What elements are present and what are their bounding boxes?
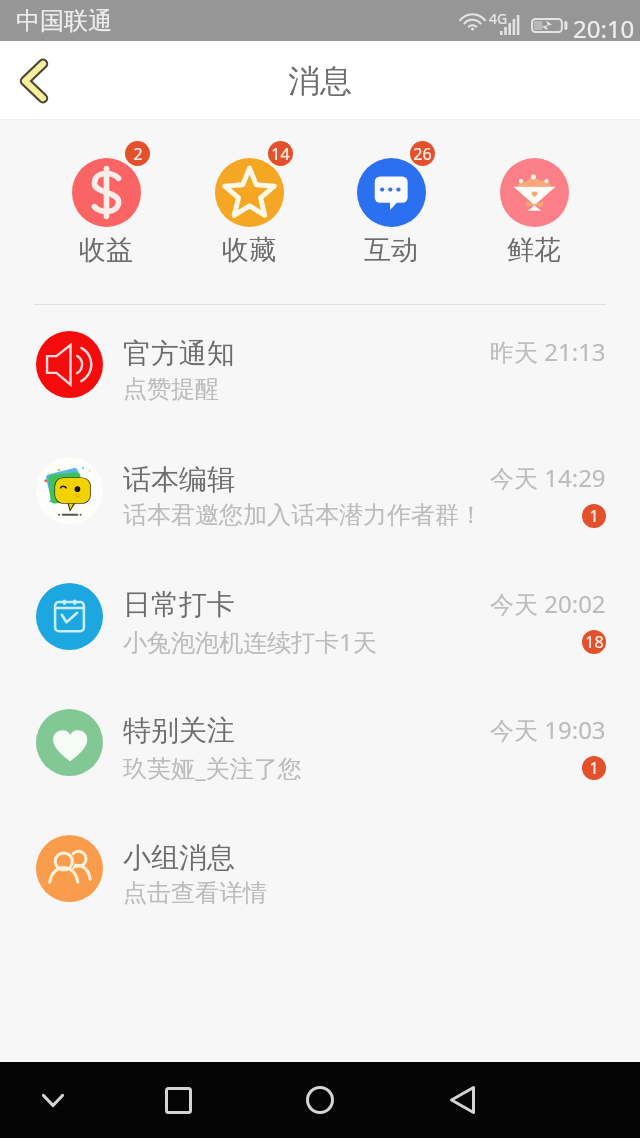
staticText: 今天 20:02 [490,587,606,617]
staticText: 1 [589,505,599,527]
staticText: 今天 19:03 [490,713,606,743]
staticText: 18 [585,631,604,653]
staticText: 日常打卡 [123,587,235,622]
staticText: 今天 14:29 [490,461,606,491]
staticText: 14 [271,143,290,165]
button[interactable]: 鲜花 [498,120,570,267]
button[interactable]: Hide navigation bar [13,1062,93,1138]
button[interactable]: 14 [213,120,285,267]
button[interactable]: 日常打卡 [0,557,640,683]
button[interactable]: 官方通知 [0,305,640,431]
staticText: 中国联通 [16,6,112,36]
staticText: 消息 [288,61,352,101]
staticText: 26 [413,143,432,165]
button[interactable]: 特别关注 [0,683,640,809]
staticText: 1 [589,757,599,779]
staticText: 玖芙娅_关注了您 [123,751,302,784]
staticText: 话本君邀您加入话本潜力作者群！ [123,500,483,530]
button[interactable]: Back [0,41,66,120]
staticText: 话本编辑 [123,462,235,497]
staticText: 2 [133,143,143,165]
button[interactable]: Recent apps [138,1062,218,1138]
button[interactable]: Home [280,1062,360,1138]
button[interactable]: 26 [355,120,427,267]
staticText: 点击查看详情 [123,878,267,908]
staticText: 官方通知 [123,336,235,371]
button[interactable]: Back [422,1062,502,1138]
staticText: 4G [489,9,508,28]
staticText: 小组消息 [123,840,235,875]
staticText: 鲜花 [507,233,561,267]
staticText: 小兔泡泡机连续打卡1天 [123,625,377,658]
staticText: 点赞提醒 [123,374,219,404]
staticText: 20:10 [573,12,635,45]
staticText: 特别关注 [123,713,235,748]
staticText: 昨天 21:13 [490,335,606,365]
button[interactable]: 小组消息 [0,809,640,935]
staticText: 收益 [79,233,133,267]
button[interactable]: 话本编辑 [0,431,640,557]
staticText: 互动 [364,233,418,267]
button[interactable]: 2 [70,120,142,267]
staticText: 收藏 [222,233,276,267]
